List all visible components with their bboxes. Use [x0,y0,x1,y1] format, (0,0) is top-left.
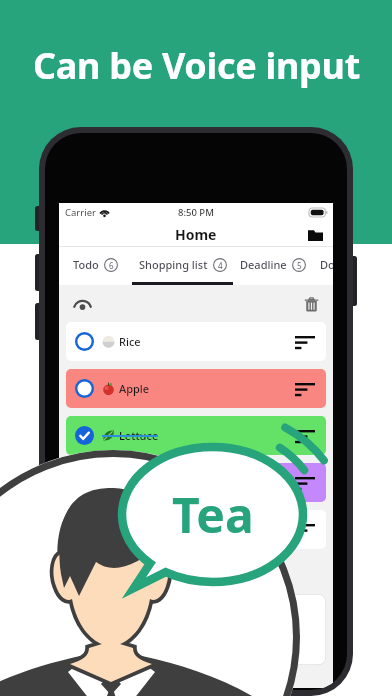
staticText: 8:50 PM [178,206,214,219]
staticText: Lettuce [119,428,159,443]
button[interactable]: Lettuce [66,416,326,455]
button[interactable]: Folders [305,225,325,245]
button[interactable]: Show completed [71,293,93,315]
staticText: Apple [119,381,150,396]
staticText: Carrier [65,206,96,219]
button[interactable]: Apple [66,369,326,408]
staticText: 5 [297,260,302,271]
button[interactable] [66,463,326,502]
staticText: Home [175,225,217,244]
staticText: Done [320,257,333,272]
button[interactable]: Delete [301,294,321,314]
button[interactable] [66,510,326,549]
staticText: 6 [109,260,114,271]
button[interactable]: Deadline [233,247,313,285]
staticText: Can be Voice input [33,41,360,90]
staticText: Tea [172,482,254,547]
button[interactable]: Todo [59,247,132,285]
button[interactable]: Done [313,247,333,285]
staticText: Todo [73,257,99,272]
button[interactable]: Rice [66,322,326,361]
staticText: 4 [218,260,223,271]
button[interactable]: Shopping list [132,247,233,285]
button[interactable] [66,594,326,665]
staticText: Rice [119,334,141,349]
staticText: Deadline [240,257,287,272]
staticText: Shopping list [139,257,208,272]
